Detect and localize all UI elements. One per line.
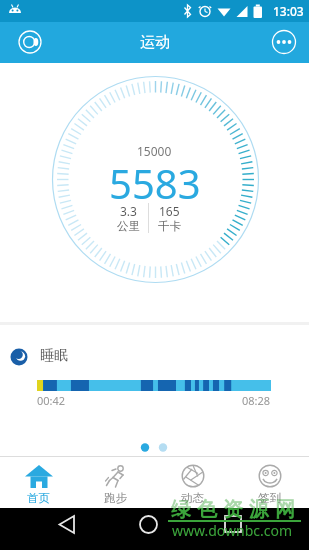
- staticText: 165: [159, 203, 180, 219]
- staticText: 00:42: [37, 393, 66, 408]
- button[interactable]: 首页: [0, 456, 77, 508]
- button[interactable]: 签到: [231, 456, 308, 508]
- staticText: 睡眠: [40, 347, 68, 365]
- button[interactable]: 跑步: [77, 456, 154, 508]
- button[interactable]: [103, 508, 206, 550]
- button[interactable]: [0, 508, 103, 550]
- staticText: 3.3: [120, 203, 137, 219]
- staticText: 千卡: [158, 219, 181, 233]
- staticText: 绿色资源网: [168, 497, 298, 508]
- staticText: 首页: [27, 491, 50, 505]
- staticText: 运动: [140, 33, 170, 52]
- staticText: 动态: [181, 491, 204, 505]
- staticText: 跑步: [104, 491, 127, 505]
- staticText: www.downbc.com: [172, 521, 293, 540]
- button[interactable]: [15, 27, 45, 57]
- staticText: 签到: [258, 491, 281, 505]
- button[interactable]: 动态: [154, 456, 231, 508]
- button[interactable]: 睡眠: [0, 325, 309, 420]
- staticText: 13:03: [273, 3, 304, 19]
- staticText: 15000: [137, 143, 172, 159]
- staticText: 5583: [109, 156, 201, 210]
- button[interactable]: [206, 508, 309, 550]
- staticText: 公里: [117, 219, 140, 233]
- button[interactable]: [269, 27, 299, 57]
- staticText: 08:28: [242, 393, 271, 408]
- staticText: 绿色资源网: [168, 508, 298, 522]
